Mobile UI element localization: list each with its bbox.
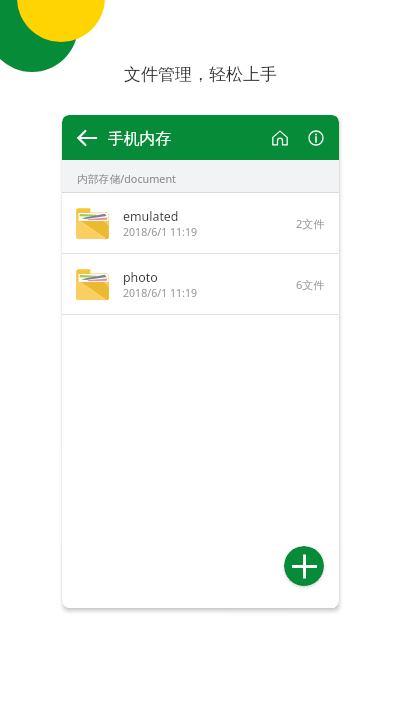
staticText: 2018/6/1 11:19 [123,225,198,239]
button[interactable]: Info [299,121,333,155]
staticText: 手机内存 [108,129,172,149]
button[interactable]: Add [284,546,324,586]
button[interactable]: emulated [62,193,339,253]
staticText: emulated [123,208,179,225]
staticText: 文件管理，轻松上手 [124,64,277,85]
button[interactable]: 内部存储/document [62,160,339,192]
staticText: 6文件 [296,277,325,292]
button[interactable]: Back [66,115,108,160]
staticText: 内部存储/document [77,171,176,186]
button[interactable]: photo [62,254,339,314]
staticText: 2文件 [296,216,325,231]
staticText: photo [123,269,158,286]
staticText: 2018/6/1 11:19 [123,286,198,300]
button[interactable]: Home [263,121,297,155]
